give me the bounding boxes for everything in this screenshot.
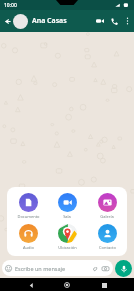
button[interactable]: Audio [9, 224, 47, 250]
button[interactable]: Recent apps [98, 279, 110, 291]
button[interactable]: More options [121, 15, 133, 27]
staticText: Galería [100, 214, 114, 219]
button[interactable]: Contacto [88, 224, 126, 250]
button[interactable]: Attach [90, 264, 99, 273]
staticText: Contacto [99, 245, 116, 250]
staticText: 10:00 [4, 2, 17, 9]
button[interactable]: Home [61, 279, 73, 291]
staticText: Audio [23, 245, 34, 250]
button[interactable]: Voice call [107, 14, 121, 28]
button[interactable]: Camera [101, 264, 110, 273]
button[interactable]: Documento [9, 193, 47, 219]
button[interactable]: Video call [93, 14, 107, 28]
staticText: Sala [63, 214, 71, 219]
button[interactable]: Back [2, 16, 13, 27]
staticText: Escribe un mensaje [15, 265, 90, 272]
button[interactable]: Back [25, 279, 37, 291]
button[interactable]: Ubicación [48, 224, 86, 250]
button[interactable]: Galería [88, 193, 126, 219]
button[interactable]: Profile photo [13, 14, 28, 29]
staticText: Ubicación [58, 245, 77, 250]
button[interactable]: Record voice message [115, 260, 132, 277]
button[interactable]: Sala [48, 193, 86, 219]
button[interactable]: Ana Casas [32, 16, 93, 26]
staticText: Documento [17, 214, 40, 219]
button[interactable]: Escribe un mensaje [2, 260, 113, 276]
